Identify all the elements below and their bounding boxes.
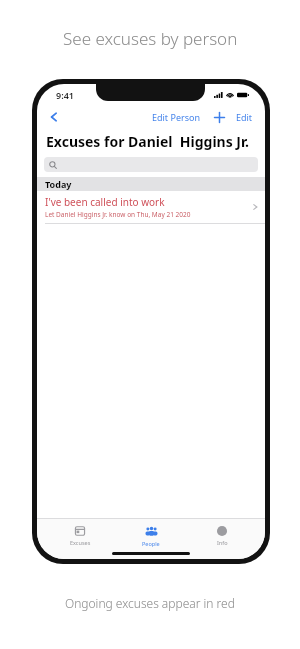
staticText: Edit Person — [152, 111, 201, 123]
button[interactable]: Back — [43, 106, 65, 128]
staticText: Ongoing excuses appear in red — [65, 595, 235, 611]
staticText: See excuses by person — [63, 27, 238, 50]
button[interactable]: Info — [194, 523, 250, 548]
staticText: Excuses for Daniel Higgins Jr. — [46, 132, 249, 151]
button[interactable]: People — [123, 523, 179, 549]
staticText: Info — [217, 539, 228, 546]
button[interactable]: Excuses — [52, 523, 108, 548]
button[interactable]: Search — [44, 157, 258, 172]
staticText: Today — [45, 178, 72, 190]
button[interactable]: Edit — [234, 108, 255, 126]
staticText: Let Daniel Higgins Jr. know on Thu, May … — [45, 210, 191, 219]
button[interactable]: I've been called into work — [37, 191, 265, 224]
staticText: People — [142, 540, 160, 547]
staticText: Edit — [236, 111, 253, 123]
button[interactable]: Edit Person — [150, 108, 203, 126]
staticText: I've been called into work — [45, 195, 165, 209]
staticText: 9:41 — [56, 89, 74, 101]
staticText: Excuses — [70, 539, 91, 546]
button[interactable]: Add — [212, 110, 226, 124]
